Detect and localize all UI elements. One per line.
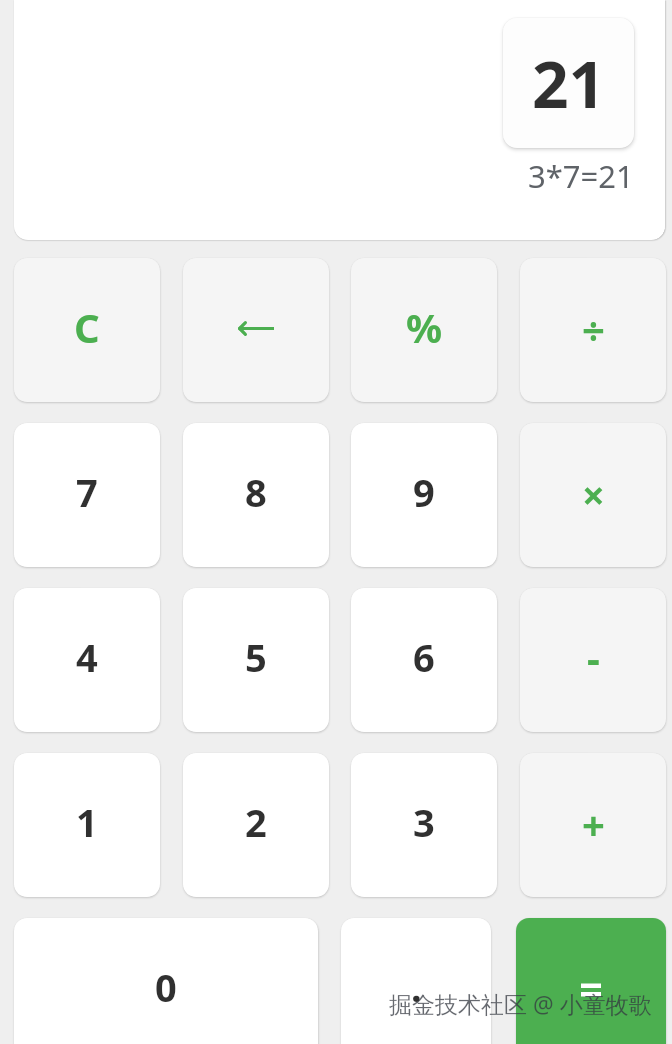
button[interactable]: 7 [14,423,160,567]
button[interactable]: C [14,258,160,402]
staticText: 1 [76,796,98,848]
staticText: 2 [245,796,267,848]
button[interactable]: . [341,918,491,1044]
button[interactable]: % [351,258,497,402]
staticText: 3 [413,796,435,848]
button[interactable]: 3 [351,753,497,897]
staticText: - [587,630,600,684]
button[interactable]: 6 [351,588,497,732]
staticText: 5 [245,631,267,683]
staticText: 6 [413,631,435,683]
staticText: 7 [76,466,98,518]
staticText: 3*7=21 [528,155,634,197]
staticText: % [406,300,443,354]
button[interactable]: - [520,588,666,732]
button[interactable]: + [520,753,666,897]
staticText: ÷ [582,302,605,356]
staticText: × [582,467,605,521]
staticText: 21 [532,40,606,127]
staticText: 4 [76,631,98,683]
staticText: + [582,797,605,851]
button[interactable]: 4 [14,588,160,732]
button[interactable]: 0 [14,918,318,1044]
button[interactable]: 8 [183,423,329,567]
button[interactable]: ÷ [520,258,666,402]
staticText: 9 [413,466,435,518]
button[interactable]: × [520,423,666,567]
button[interactable]: 9 [351,423,497,567]
staticText: 掘金技术社区 @ 小童牧歌 [389,988,652,1019]
button[interactable]: Backspace [183,258,329,402]
button[interactable]: 1 [14,753,160,897]
staticText: 0 [155,961,177,1013]
button[interactable]: Equals [516,918,666,1044]
staticText: C [74,300,100,354]
button[interactable]: 2 [183,753,329,897]
button[interactable]: 5 [183,588,329,732]
staticText: 8 [245,466,267,518]
staticText: . [411,961,422,1013]
